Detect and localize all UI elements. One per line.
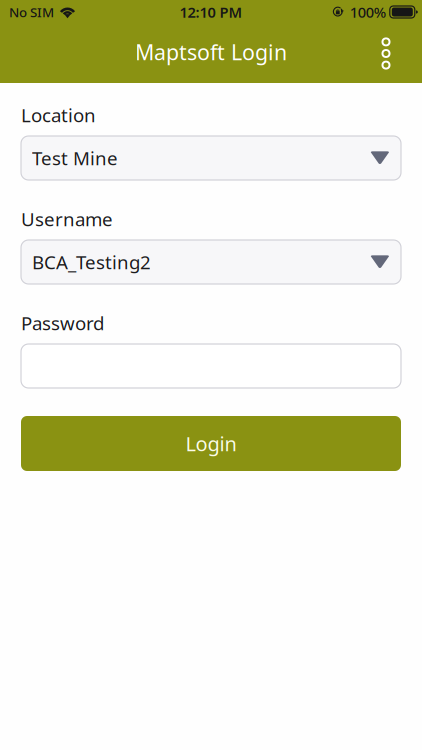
button[interactable]: Test Mine <box>21 136 401 180</box>
button[interactable]: Login <box>21 416 401 471</box>
staticText: Username <box>21 207 113 231</box>
staticText: BCA_Testing2 <box>32 250 151 274</box>
button[interactable]: Password <box>21 344 401 388</box>
staticText: Maptsoft Login <box>135 38 287 66</box>
staticText: Test Mine <box>32 146 118 170</box>
staticText: Login <box>185 430 236 457</box>
staticText: Location <box>21 103 96 127</box>
staticText: No SIM <box>9 3 54 21</box>
staticText: Password <box>21 311 104 335</box>
staticText: 12:10 PM <box>179 2 242 22</box>
button[interactable]: BCA_Testing2 <box>21 240 401 284</box>
button[interactable]: More options <box>364 29 408 77</box>
staticText: 100% <box>350 2 386 22</box>
